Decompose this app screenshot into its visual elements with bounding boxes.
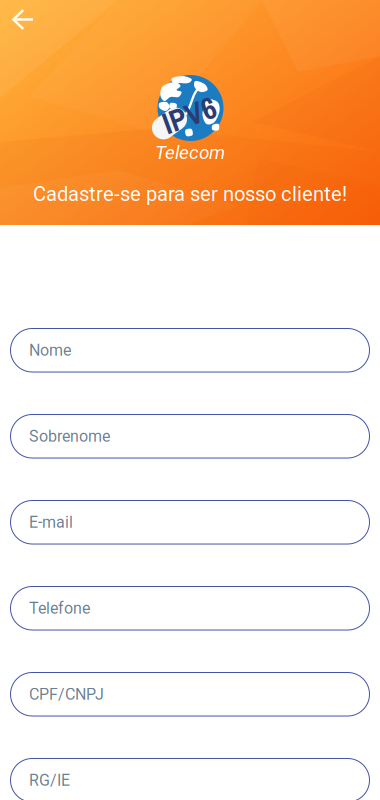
button[interactable]: Back bbox=[0, 0, 46, 42]
staticText: CPF/CNPJ bbox=[29, 685, 104, 704]
button[interactable]: Telefone bbox=[10, 586, 369, 630]
staticText: RG/IE bbox=[29, 771, 70, 790]
staticText: Telecom bbox=[155, 141, 225, 164]
staticText: Cadastre-se para ser nosso cliente! bbox=[33, 182, 347, 206]
button[interactable]: CPF/CNPJ bbox=[10, 672, 369, 716]
staticText: Sobrenome bbox=[29, 427, 110, 446]
staticText: E-mail bbox=[29, 513, 73, 532]
button[interactable]: Nome bbox=[10, 328, 369, 372]
staticText: Telefone bbox=[29, 599, 90, 618]
staticText: IPV6 bbox=[161, 92, 216, 134]
button[interactable]: E-mail bbox=[10, 500, 369, 544]
button[interactable]: RG/IE bbox=[10, 758, 369, 800]
button[interactable]: Sobrenome bbox=[10, 414, 369, 458]
staticText: Nome bbox=[29, 341, 71, 360]
